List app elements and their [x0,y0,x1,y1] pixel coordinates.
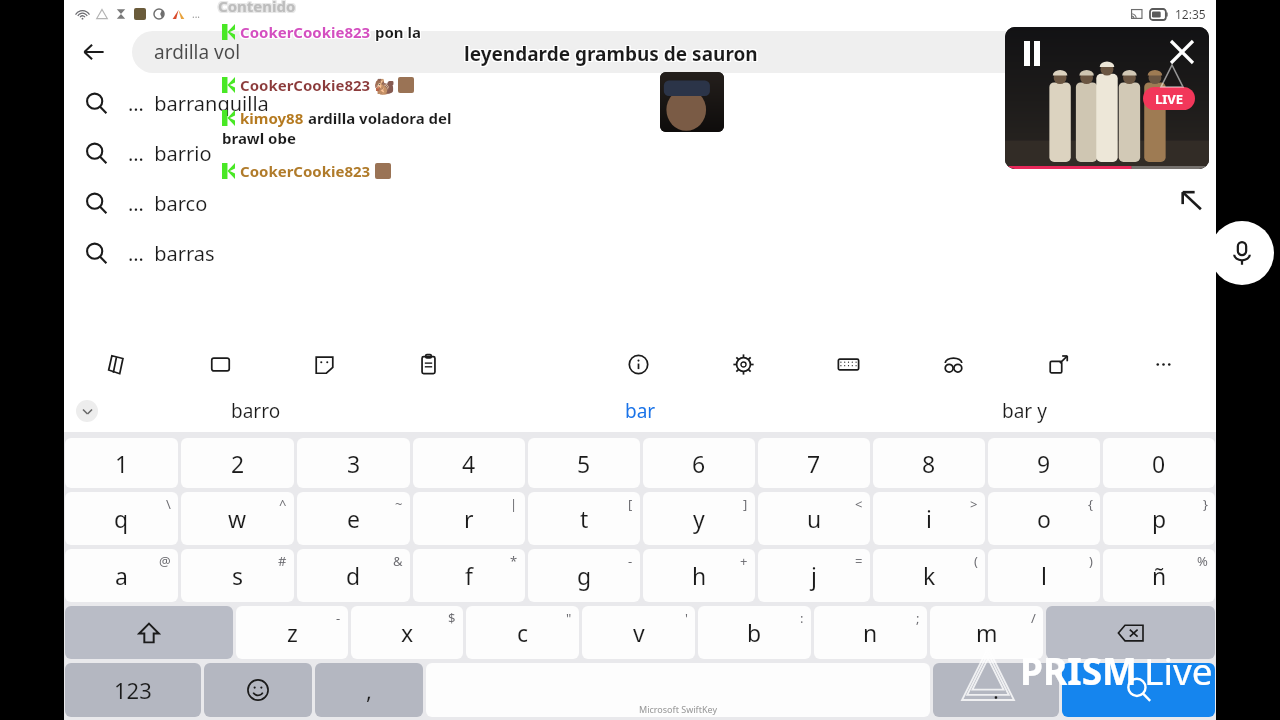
button[interactable]: bar y [832,390,1216,432]
button[interactable]: n [814,606,927,659]
button[interactable]: Pause [1024,41,1040,66]
button[interactable]: 3 [297,438,410,488]
staticText: kimoy88 [239,108,303,128]
button[interactable]: 6 [643,438,755,488]
button[interactable]: Stickers [272,338,376,390]
button[interactable]: e [297,492,410,545]
button[interactable]: 7 [758,438,870,488]
button[interactable]: Voice search [1210,221,1274,285]
button[interactable]: v [582,606,695,659]
button[interactable]: More [1111,338,1216,390]
button[interactable]: ardilla vol [132,31,1204,73]
button[interactable]: Incognito [901,338,1006,390]
staticText: o [1037,503,1051,534]
button[interactable]: b [698,606,811,659]
button[interactable]: Clipboard [376,338,481,390]
button[interactable]: Shift [65,606,233,659]
button[interactable]: Info [586,338,691,390]
button[interactable]: y [643,492,755,545]
staticText: j [811,560,817,591]
staticText: ^ [279,495,287,513]
staticText: Live [1144,645,1213,695]
button[interactable]: p [1103,492,1215,545]
button[interactable]: h [643,549,755,602]
button[interactable]: . [933,663,1059,717]
button[interactable]: u [758,492,870,545]
staticText: 🐿 [370,76,393,96]
button[interactable]: k [873,549,985,602]
staticText: Contenido [218,0,296,16]
staticText: x [401,617,414,648]
button[interactable]: Clipboard stickers [64,338,168,390]
button[interactable]: Keyboard mode [796,338,901,390]
staticText: [ [628,495,633,513]
staticText: ' [685,609,688,627]
button[interactable]: m [930,606,1043,659]
button[interactable]: , [315,663,423,717]
button[interactable]: 9 [988,438,1100,488]
button[interactable]: bar [448,390,832,432]
staticText: n [863,617,878,648]
button[interactable]: LIVE [1143,87,1195,110]
staticText: CookerCookie823 [241,22,372,42]
button[interactable]: t [528,492,640,545]
button[interactable]: Space [426,663,930,717]
button[interactable]: f [413,549,525,602]
button[interactable]: z [236,606,348,659]
staticText: t [580,503,589,534]
button[interactable]: s [181,549,294,602]
button[interactable]: … barrio [64,128,1216,178]
button[interactable]: Expand suggestions [76,400,98,422]
button[interactable]: … barco [64,178,1216,228]
staticText: CookerCookie823 [240,23,371,43]
button[interactable]: x [351,606,463,659]
staticText: ardilla voladora del [304,108,452,128]
staticText: ardilla vol [154,39,241,65]
button[interactable]: Backspace [1046,606,1215,659]
button[interactable]: Settings [691,338,796,390]
button[interactable]: i [873,492,985,545]
button[interactable]: 2 [181,438,294,488]
button[interactable]: d [297,549,410,602]
button[interactable]: 123 [65,663,201,717]
button[interactable]: w [181,492,294,545]
button[interactable]: l [988,549,1100,602]
staticText: … barrio [128,140,212,167]
staticText: CookerCookie823 [241,74,372,94]
staticText: 🐿 [370,75,393,95]
button[interactable]: Close [1167,37,1197,67]
staticText: / [1031,609,1036,627]
button[interactable]: … barranquilla [64,78,1216,128]
button[interactable]: 0 [1103,438,1215,488]
staticText: > [970,495,978,513]
button[interactable]: 4 [413,438,525,488]
staticText: CookerCookie823 [241,160,372,180]
staticText: 4 [462,448,476,479]
button[interactable]: 5 [528,438,640,488]
button[interactable]: 8 [873,438,985,488]
button[interactable]: GIF [168,338,272,390]
button[interactable]: … barras [64,228,1216,278]
button[interactable]: j [758,549,870,602]
button[interactable]: Back [72,30,116,74]
staticText: { [1088,495,1093,513]
button[interactable]: ñ [1103,549,1215,602]
button[interactable]: a [65,549,178,602]
staticText: Contenido [218,0,296,17]
button[interactable]: 1 [65,438,178,488]
button[interactable]: q [65,492,178,545]
button[interactable]: Search [1062,663,1215,717]
button[interactable]: Resize [1006,338,1111,390]
button[interactable]: r [413,492,525,545]
staticText: LIVE [1155,90,1184,108]
staticText: " [566,609,572,627]
button[interactable]: Emoji [204,663,312,717]
staticText: CookerCookie823 [239,21,370,41]
button[interactable]: o [988,492,1100,545]
button[interactable]: Pause [1005,27,1209,169]
button[interactable]: barro [64,390,448,432]
staticText: bar y [1002,398,1047,424]
button[interactable]: g [528,549,640,602]
button[interactable]: c [466,606,579,659]
